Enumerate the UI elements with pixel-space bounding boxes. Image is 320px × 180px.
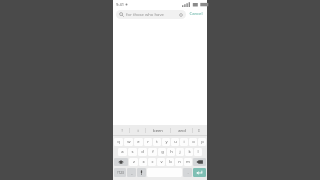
staticText: for those who have: [126, 12, 164, 18]
staticText: g: [161, 149, 164, 155]
staticText: e: [137, 139, 140, 145]
button[interactable]: j: [176, 148, 184, 156]
button[interactable]: I: [193, 125, 205, 136]
button[interactable]: q: [114, 138, 123, 146]
staticText: n: [178, 159, 181, 165]
button[interactable]: i: [130, 125, 145, 136]
button[interactable]: v: [157, 158, 165, 166]
button[interactable]: i: [180, 138, 188, 146]
staticText: 9:41: [116, 2, 124, 7]
staticText: u: [174, 139, 177, 145]
button[interactable]: ?123: [114, 168, 126, 177]
other: Search: [119, 12, 124, 17]
button[interactable]: a: [118, 148, 127, 156]
staticText: i: [137, 128, 139, 134]
staticText: y: [165, 139, 168, 145]
staticText: I: [198, 128, 200, 134]
staticText: j: [179, 149, 181, 155]
button[interactable]: Voice input: [137, 168, 146, 177]
staticText: s: [131, 149, 134, 155]
button[interactable]: p: [198, 138, 206, 146]
staticText: m: [186, 159, 190, 165]
button[interactable]: s: [128, 148, 137, 156]
staticText: b: [169, 159, 172, 165]
staticText: d: [141, 149, 144, 155]
staticText: f: [152, 149, 154, 155]
staticText: !: [121, 128, 123, 134]
button[interactable]: u: [171, 138, 179, 146]
button[interactable]: t: [153, 138, 161, 146]
button[interactable]: z: [129, 158, 138, 166]
staticText: z: [133, 159, 135, 165]
button[interactable]: w: [124, 138, 133, 146]
button[interactable]: m: [184, 158, 192, 166]
button[interactable]: e: [134, 138, 143, 146]
staticText: .: [187, 170, 189, 176]
button[interactable]: c: [148, 158, 156, 166]
button[interactable]: Enter: [193, 168, 206, 177]
button[interactable]: and: [171, 125, 192, 136]
button[interactable]: y: [162, 138, 170, 146]
staticText: p: [201, 139, 204, 145]
staticText: ?123: [117, 171, 124, 175]
button[interactable]: h: [167, 148, 175, 156]
button[interactable]: ,: [127, 168, 136, 177]
button[interactable]: b: [166, 158, 174, 166]
staticText: and: [178, 128, 186, 134]
button[interactable]: Cancel: [188, 10, 204, 18]
button[interactable]: r: [144, 138, 152, 146]
button[interactable]: g: [158, 148, 166, 156]
staticText: c: [151, 159, 154, 165]
staticText: t: [156, 139, 158, 145]
staticText: ,: [131, 170, 133, 176]
staticText: w: [127, 139, 131, 145]
button[interactable]: !: [115, 125, 129, 136]
button[interactable]: o: [189, 138, 197, 146]
staticText: been: [153, 128, 163, 134]
staticText: v: [160, 159, 163, 165]
staticText: x: [142, 159, 145, 165]
staticText: i: [183, 139, 185, 145]
button[interactable]: k: [185, 148, 193, 156]
button[interactable]: x: [139, 158, 147, 166]
staticText: a: [121, 149, 124, 155]
staticText: o: [192, 139, 195, 145]
staticText: q: [117, 139, 120, 145]
staticText: l: [197, 149, 199, 155]
button[interactable]: l: [194, 148, 202, 156]
staticText: h: [170, 149, 173, 155]
button[interactable]: Backspace: [193, 158, 206, 166]
staticText: Cancel: [189, 11, 203, 17]
button[interactable]: n: [175, 158, 183, 166]
button[interactable]: Shift: [114, 158, 128, 166]
staticText: k: [188, 149, 191, 155]
button[interactable]: d: [138, 148, 147, 156]
button[interactable]: f: [148, 148, 157, 156]
button[interactable]: been: [146, 125, 170, 136]
staticText: r: [147, 139, 149, 145]
button[interactable]: Search: [116, 10, 186, 19]
